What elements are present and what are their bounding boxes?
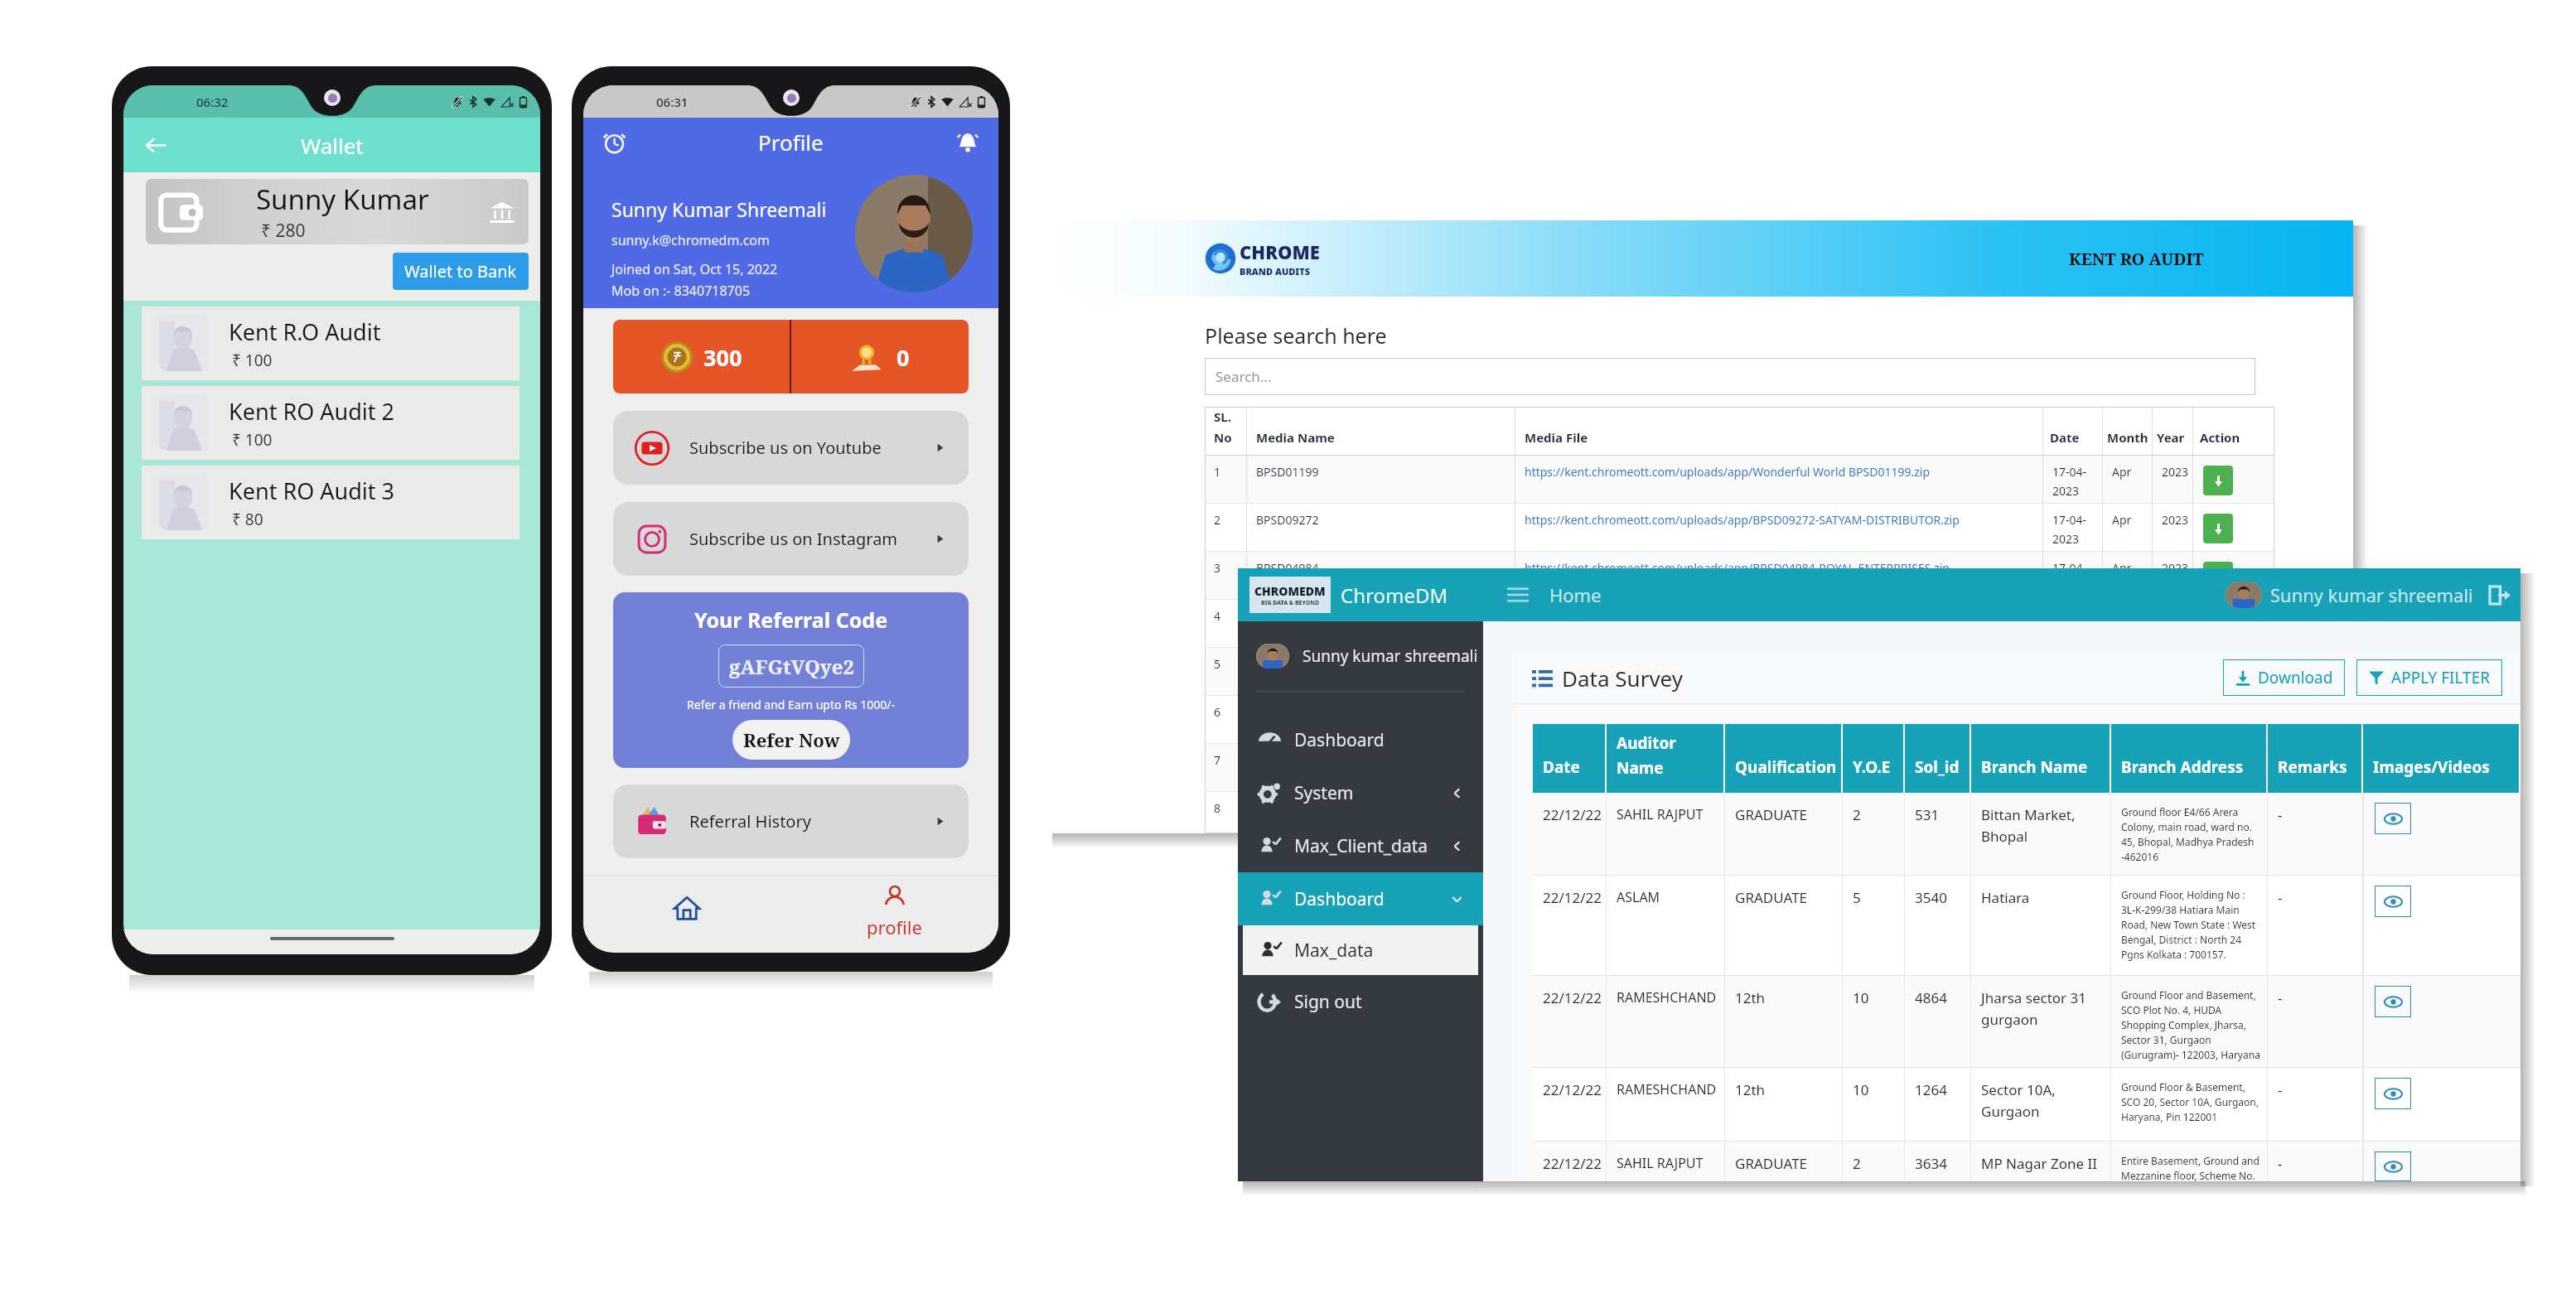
- staticText: BRAND AUDITS: [1240, 265, 1311, 278]
- staticText: 22/12/22: [1543, 888, 1602, 907]
- button[interactable]: Kent RO Audit 3: [142, 466, 520, 539]
- staticText: Sign out: [1294, 990, 1362, 1014]
- button[interactable]: Back: [137, 126, 175, 164]
- button[interactable]: Dashboard: [1238, 713, 1483, 766]
- button[interactable]: Wallet to Bank: [393, 253, 529, 290]
- button[interactable]: View media: [2375, 1151, 2411, 1181]
- staticText: KENT RO AUDIT: [2069, 248, 2204, 270]
- staticText: 2: [1853, 805, 1861, 824]
- staticText: Sunny Kumar Shreemali: [611, 196, 827, 222]
- staticText: Subscribe us on Instagram: [689, 528, 935, 550]
- staticText: 12th: [1735, 1080, 1766, 1099]
- staticText: -: [2278, 988, 2283, 1007]
- staticText: 3: [1214, 560, 1221, 576]
- staticText: Referral History: [689, 810, 935, 833]
- staticText: -: [2278, 1154, 2283, 1173]
- button[interactable]: Kent RO Audit 2: [142, 386, 520, 460]
- staticText: -: [2278, 805, 2283, 824]
- button[interactable]: Sign out: [1238, 975, 1483, 1028]
- staticText: Auditor Name: [1617, 732, 1676, 778]
- staticText: Kent R.O Audit: [229, 316, 381, 347]
- staticText: Action: [2200, 429, 2240, 446]
- staticText: BPSD09272: [1256, 512, 1319, 528]
- button[interactable]: Download: [2203, 562, 2233, 591]
- staticText: Wallet: [301, 131, 364, 160]
- staticText: Images/Videos: [2373, 756, 2490, 778]
- button[interactable]: Subscribe us on Instagram: [613, 502, 969, 576]
- staticText: CHROME: [1240, 239, 1320, 264]
- button[interactable]: View media: [2375, 986, 2411, 1017]
- button[interactable]: Download: [2203, 514, 2233, 543]
- button[interactable]: Home: [583, 876, 790, 949]
- button[interactable]: View media: [2375, 1078, 2411, 1109]
- staticText: -: [2278, 1080, 2283, 1099]
- button[interactable]: Kent R.O Audit: [142, 307, 520, 380]
- staticText: Ground floor E4/66 Arera Colony, main ro…: [2121, 805, 2255, 863]
- button[interactable]: Max_data: [1243, 925, 1478, 975]
- button[interactable]: System: [1238, 766, 1483, 819]
- button[interactable]: Menu: [1505, 582, 1531, 608]
- staticText: SAHIL RAJPUT: [1617, 1154, 1704, 1172]
- staticText: 17-04- 2023: [2052, 512, 2087, 547]
- button[interactable]: Bank: [486, 196, 519, 229]
- staticText: 5: [1214, 656, 1221, 672]
- staticText: Hatiara: [1981, 888, 2030, 907]
- staticText: 8: [1214, 800, 1221, 816]
- staticText: 10: [1853, 988, 1869, 1007]
- button[interactable]: Max_Client_data: [1238, 819, 1483, 872]
- staticText: 7: [1214, 752, 1221, 768]
- button[interactable]: Download: [2223, 659, 2345, 696]
- button[interactable]: Refer Now: [732, 720, 850, 760]
- staticText: Mob on :- 8340718705: [611, 282, 751, 300]
- staticText: Ground Floor & Basement, SCO 20, Sector …: [2121, 1080, 2259, 1123]
- staticText: 22/12/22: [1543, 805, 1602, 824]
- staticText: Ground Floor and Basement, SCO Plot No. …: [2121, 988, 2260, 1061]
- button[interactable]: Notifications: [949, 123, 987, 161]
- staticText: Dashboard: [1294, 728, 1385, 752]
- button[interactable]: Referral History: [613, 785, 969, 858]
- staticText: Kent RO Audit 2: [229, 396, 395, 427]
- staticText: profile: [867, 915, 922, 939]
- staticText: Media Name: [1256, 429, 1335, 446]
- staticText: Joined on Sat, Oct 15, 2022: [611, 260, 778, 278]
- staticText: Ground Floor, Holding No : 3L-K-299/38 H…: [2121, 888, 2256, 961]
- staticText: MP Nagar Zone II: [1981, 1154, 2098, 1173]
- button[interactable]: View media: [2375, 886, 2411, 917]
- button[interactable]: Search...: [1205, 358, 2255, 395]
- staticText: 17-04- 2023: [2052, 464, 2087, 499]
- staticText: Your Referral Code: [694, 606, 888, 634]
- staticText: RAMESHCHAND: [1617, 988, 1717, 1007]
- staticText: SL. No: [1214, 408, 1232, 446]
- button[interactable]: Subscribe us on Youtube: [613, 411, 969, 485]
- staticText: Sunny Kumar: [256, 181, 429, 218]
- staticText: 10: [1853, 1080, 1869, 1099]
- button[interactable]: View media: [2375, 803, 2411, 834]
- button[interactable]: APPLY FILTER: [2356, 659, 2502, 696]
- staticText: ₹ 100: [232, 350, 273, 371]
- button[interactable]: Home: [1549, 582, 1602, 607]
- staticText: gAFGtVQye2: [729, 653, 854, 680]
- button[interactable]: Dashboard: [1238, 872, 1483, 925]
- button[interactable]: Sign out: [2490, 585, 2511, 606]
- staticText: Date: [2050, 429, 2080, 446]
- staticText: https://kent.chromeott.com/uploads/app/W…: [1525, 464, 1931, 480]
- staticText: Search...: [1216, 367, 1272, 386]
- staticText: Subscribe us on Youtube: [689, 437, 935, 459]
- staticText: ₹ 80: [232, 509, 263, 530]
- staticText: Wallet to Bank: [404, 260, 517, 282]
- staticText: Sector 10A, Gurgaon: [1981, 1080, 2106, 1121]
- staticText: 06:31: [656, 94, 689, 110]
- button[interactable]: Download: [2203, 466, 2233, 495]
- staticText: 06:32: [196, 94, 229, 110]
- button[interactable]: Alarm: [595, 123, 633, 161]
- staticText: GRADUATE: [1735, 1154, 1808, 1173]
- staticText: 3540: [1915, 888, 1947, 907]
- staticText: 300: [703, 342, 742, 373]
- staticText: GRADUATE: [1735, 888, 1808, 907]
- staticText: Refer Now: [743, 727, 840, 752]
- button[interactable]: Sunny Kumar: [146, 179, 529, 244]
- staticText: 12th: [1735, 988, 1766, 1007]
- button[interactable]: profile: [790, 876, 998, 949]
- button[interactable]: 300: [613, 320, 969, 393]
- staticText: Apr: [2112, 512, 2132, 528]
